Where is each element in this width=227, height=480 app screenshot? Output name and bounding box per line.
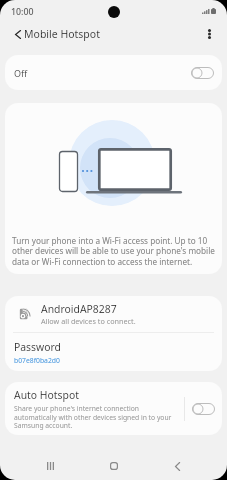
button[interactable]: Auto Hotspot <box>5 382 184 435</box>
staticText: Password <box>14 340 61 354</box>
button[interactable]: Back <box>155 453 199 479</box>
button[interactable]: Toggle <box>191 67 214 79</box>
staticText: Auto Hotspot <box>14 388 79 402</box>
staticText: Allow all devices to connect. <box>41 316 136 326</box>
button[interactable]: Recent apps <box>28 453 72 479</box>
staticText: b07e8f0ba2d0 <box>14 356 60 365</box>
staticText: Mobile Hotspot <box>24 27 100 41</box>
button[interactable]: Password <box>5 333 222 371</box>
staticText: 10:00 <box>11 6 34 18</box>
staticText: Off <box>14 67 28 79</box>
staticText: Turn your phone into a Wi-Fi access poin… <box>12 235 219 268</box>
button[interactable]: Toggle <box>192 403 215 415</box>
button[interactable]: Auto Hotspot <box>185 382 222 435</box>
button[interactable]: Navigate up <box>0 21 24 47</box>
button[interactable]: Off <box>5 55 222 90</box>
staticText: AndroidAP8287 <box>41 302 117 316</box>
staticText: Share your phone's internet connection a… <box>14 404 173 430</box>
button[interactable]: Home <box>92 453 136 479</box>
button[interactable]: AndroidAP8287 <box>5 296 222 332</box>
button[interactable]: More options <box>195 21 225 47</box>
